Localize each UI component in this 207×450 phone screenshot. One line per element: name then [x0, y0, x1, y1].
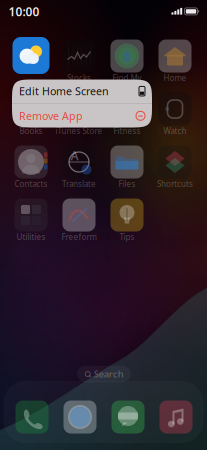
staticText: Tips	[119, 232, 134, 242]
staticText: Watch	[163, 126, 186, 136]
staticText: Remove App	[19, 109, 83, 123]
staticText: Search	[94, 368, 124, 380]
staticText: Find My	[112, 73, 141, 83]
staticText: Freeform	[61, 232, 96, 242]
button[interactable]: Search	[77, 366, 131, 382]
button[interactable]: Remove App	[12, 104, 152, 128]
button[interactable]: Edit Home Screen	[12, 79, 152, 103]
staticText: Fitness	[113, 126, 140, 136]
staticText: Translate	[62, 179, 96, 189]
staticText: 10:00	[8, 3, 39, 19]
staticText: Contacts	[14, 179, 47, 189]
staticText: Utilities	[16, 232, 45, 242]
staticText: iTunes Store	[55, 126, 102, 136]
staticText: Files	[118, 179, 135, 189]
staticText: A	[70, 147, 78, 163]
staticText: Home	[163, 73, 186, 83]
staticText: Books	[19, 126, 42, 136]
staticText: Edit Home Screen	[19, 84, 109, 98]
staticText: Shortcuts	[157, 179, 193, 189]
staticText: Stocks	[67, 73, 91, 83]
